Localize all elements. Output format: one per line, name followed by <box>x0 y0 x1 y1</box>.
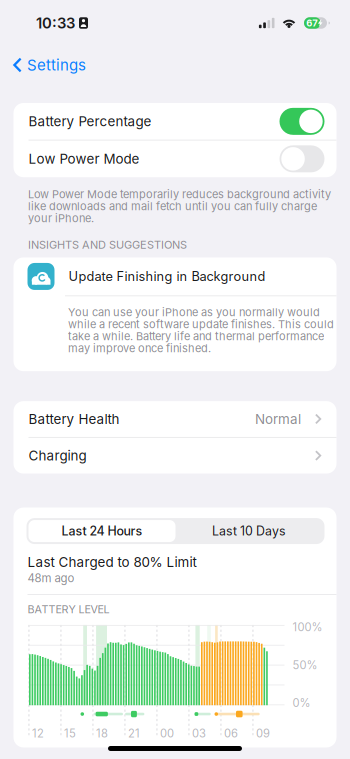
staticText: 67 <box>306 17 317 29</box>
button[interactable]: Battery Health <box>13 401 336 437</box>
button[interactable]: Low Power Mode <box>13 140 336 177</box>
staticText: 48m ago <box>27 571 74 585</box>
staticText: Normal <box>255 411 301 427</box>
staticText: Battery Percentage <box>28 113 151 129</box>
staticText: Low Power Mode <box>28 151 139 167</box>
staticText: Last Charged to 80% Limit <box>27 554 196 570</box>
button[interactable]: Charging <box>13 438 336 474</box>
button[interactable]: Settings <box>0 47 96 83</box>
staticText: 03 <box>192 727 206 740</box>
staticText: Update Finishing in Background <box>68 269 265 284</box>
staticText: 09 <box>256 727 270 740</box>
staticText: 18 <box>96 727 108 740</box>
staticText: Settings <box>27 56 86 74</box>
staticText: INSIGHTS AND SUGGESTIONS <box>28 238 187 251</box>
staticText: Low Power Mode temporarily reduces backg… <box>28 188 331 224</box>
staticText: 00 <box>160 727 174 740</box>
staticText: You can use your iPhone as you normally … <box>68 306 334 354</box>
staticText: 06 <box>224 727 238 740</box>
staticText: Last 10 Days <box>212 524 286 539</box>
staticText: 21 <box>128 727 140 740</box>
staticText: 12 <box>32 727 44 740</box>
button[interactable]: Last 24 Hours <box>28 520 175 542</box>
staticText: 10:33 <box>36 14 75 32</box>
button[interactable]: Last 10 Days <box>175 520 322 542</box>
staticText: 15 <box>64 727 76 740</box>
staticText: 50% <box>292 658 317 672</box>
staticText: Last 24 Hours <box>61 524 142 539</box>
staticText: 100% <box>292 620 322 634</box>
staticText: Charging <box>28 448 86 464</box>
staticText: 0% <box>292 696 310 710</box>
staticText: BATTERY LEVEL <box>27 603 109 616</box>
button[interactable]: Battery Percentage <box>13 103 336 140</box>
staticText: Battery Health <box>28 411 119 427</box>
